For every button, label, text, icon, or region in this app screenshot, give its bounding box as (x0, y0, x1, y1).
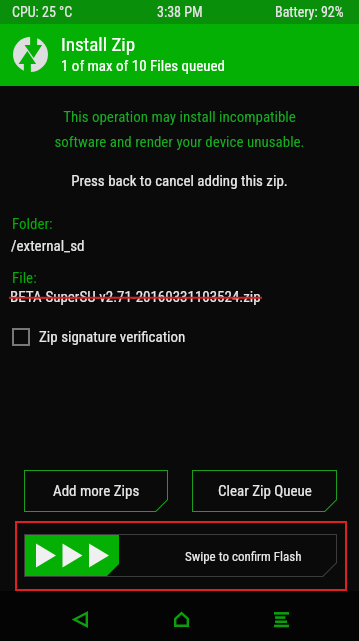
staticText: Install Zip (61, 33, 136, 55)
staticText: Battery: 92% (275, 4, 344, 20)
staticText: Add more Zips (53, 482, 140, 500)
staticText: File: (12, 269, 37, 287)
staticText: /external_sd (11, 237, 85, 255)
staticText: Swipe to confirm Flash (185, 549, 302, 564)
button[interactable]: Home (154, 591, 209, 641)
staticText: 3:38 PM (157, 4, 203, 20)
staticText: Clear Zip Queue (218, 482, 312, 500)
staticText: Press back to cancel adding this zip. (0, 172, 359, 190)
button[interactable]: Swipe to confirm Flash (24, 534, 337, 577)
staticText: BETA-SuperSU-v2.71-20160331103524.zip (10, 288, 261, 306)
button[interactable]: Back (53, 591, 108, 641)
button[interactable]: Add more Zips (24, 470, 168, 512)
staticText: This operation may install incompatible … (0, 108, 359, 150)
staticText: Folder: (12, 215, 53, 233)
staticText: 1 of max of 10 Files queued (61, 57, 225, 75)
staticText: CPU: 25 °C (12, 4, 73, 20)
button[interactable]: Clear Zip Queue (192, 470, 337, 512)
staticText: Zip signature verification (39, 328, 186, 346)
button[interactable]: Zip signature verification (12, 328, 186, 346)
button[interactable]: Recent apps (254, 591, 309, 641)
